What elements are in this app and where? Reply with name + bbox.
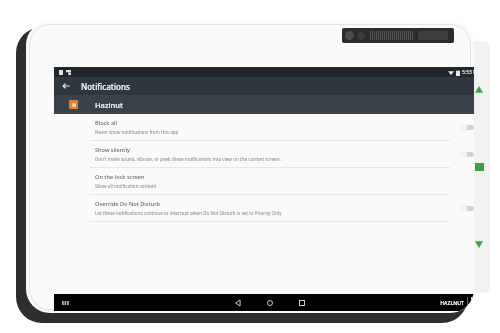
staticText: On the lock screen <box>95 173 145 181</box>
button[interactable]: Override Do Not Disturb toggle <box>454 200 474 216</box>
staticText: Override Do Not Disturb <box>95 200 161 208</box>
staticText: Block all <box>95 119 118 127</box>
button[interactable]: Scroll down <box>474 240 484 249</box>
button[interactable]: Back <box>230 295 246 311</box>
button[interactable]: Lock <box>471 297 474 308</box>
staticText: Don't make sound, vibrate, or peek these… <box>95 156 281 162</box>
button[interactable]: Block all <box>54 114 474 140</box>
staticText: Notifications <box>81 81 130 92</box>
button[interactable]: Scroll up <box>474 85 484 94</box>
button[interactable]: Back <box>58 78 74 94</box>
staticText: HAZLNUT <box>440 299 464 306</box>
staticText: Show silently <box>95 146 130 154</box>
button[interactable]: Recent apps <box>294 295 310 311</box>
button[interactable]: Menu <box>59 297 71 309</box>
button[interactable]: Home <box>262 295 278 311</box>
button[interactable]: On the lock screen <box>54 168 474 194</box>
button[interactable]: Block all toggle <box>454 119 474 135</box>
button[interactable]: Show silently <box>54 141 474 167</box>
button[interactable]: Show silently toggle <box>454 146 474 162</box>
staticText: Never show notifications from this app <box>95 129 179 135</box>
button[interactable]: Hazlnut <box>54 95 474 114</box>
button[interactable]: Override Do Not Disturb <box>54 195 474 221</box>
staticText: Let these notifications continue to inte… <box>95 210 282 216</box>
staticText: 5:53 PM <box>462 69 474 76</box>
staticText: Show all notification content <box>95 183 157 189</box>
staticText: Hazlnut <box>95 100 123 110</box>
